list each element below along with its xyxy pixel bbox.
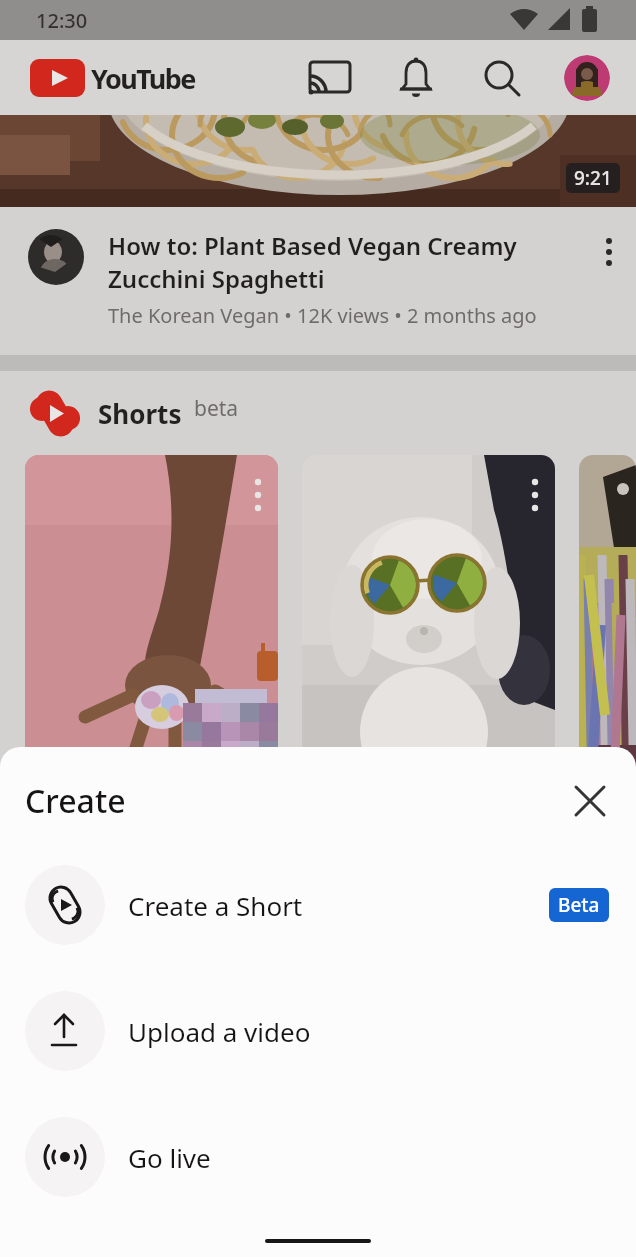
- button[interactable]: [25, 455, 278, 795]
- staticText: Beta: [558, 892, 600, 918]
- button[interactable]: [308, 56, 352, 100]
- staticText: Go live: [128, 1140, 211, 1175]
- staticText: Create a Short: [128, 888, 303, 923]
- staticText: How to: Plant Based Vegan Creamy Zucchin…: [108, 229, 517, 295]
- staticText: Shorts: [98, 396, 182, 431]
- staticText: Upload a video: [128, 1014, 311, 1049]
- staticText: YouTube: [91, 60, 195, 97]
- button[interactable]: [302, 455, 555, 795]
- button[interactable]: Go live: [0, 1094, 636, 1220]
- button[interactable]: [579, 455, 636, 795]
- button[interactable]: [596, 237, 622, 263]
- staticText: 12:30: [36, 7, 88, 34]
- button[interactable]: [564, 55, 610, 101]
- button[interactable]: YouTube: [30, 59, 195, 97]
- button[interactable]: Create a Short: [0, 842, 636, 968]
- button[interactable]: [568, 779, 612, 823]
- staticText: beta: [194, 394, 239, 423]
- button[interactable]: [394, 56, 438, 100]
- button[interactable]: Upload a video: [0, 968, 636, 1094]
- staticText: 9:21: [574, 165, 612, 191]
- staticText: The Korean Vegan • 12K views • 2 months …: [108, 302, 537, 329]
- button[interactable]: [480, 56, 524, 100]
- staticText: Create: [25, 779, 126, 823]
- button[interactable]: How to: Plant Based Vegan Creamy Zucchin…: [0, 207, 636, 355]
